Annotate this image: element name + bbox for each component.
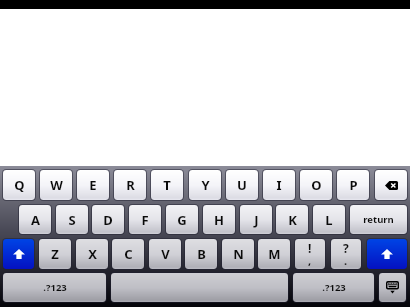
staticText: E	[89, 176, 97, 194]
staticText: I	[276, 176, 282, 194]
button[interactable]: X	[76, 239, 108, 269]
staticText: T	[163, 176, 171, 194]
staticText: U	[237, 176, 247, 194]
button[interactable]: Q	[3, 170, 35, 200]
staticText: Z	[51, 245, 59, 263]
staticText: return	[363, 213, 394, 226]
staticText: G	[177, 211, 187, 229]
button[interactable]: U	[226, 170, 258, 200]
button[interactable]: W	[40, 170, 72, 200]
staticText: .	[344, 253, 348, 268]
button[interactable]: Space	[111, 273, 288, 302]
button[interactable]: P	[337, 170, 369, 200]
button[interactable]: Shift	[367, 239, 407, 269]
button[interactable]: G	[166, 205, 198, 234]
button[interactable]: M	[258, 239, 290, 269]
staticText: X	[88, 245, 97, 263]
button[interactable]: R	[114, 170, 146, 200]
staticText: Y	[201, 176, 210, 194]
button[interactable]: I	[263, 170, 295, 200]
staticText: R	[126, 176, 135, 194]
button[interactable]: K	[276, 205, 308, 234]
staticText: Q	[14, 176, 25, 194]
button[interactable]: return	[350, 205, 407, 234]
button[interactable]: C	[112, 239, 144, 269]
staticText: H	[214, 211, 224, 229]
staticText: W	[50, 176, 63, 194]
staticText: S	[68, 211, 76, 229]
staticText: O	[311, 176, 322, 194]
button[interactable]: V	[149, 239, 181, 269]
staticText: V	[161, 245, 170, 263]
staticText: J	[254, 211, 259, 229]
staticText: !	[308, 240, 312, 256]
button[interactable]: .?123	[3, 273, 106, 302]
staticText: .?123	[43, 281, 67, 294]
button[interactable]: Backspace	[375, 170, 407, 200]
staticText: A	[31, 211, 40, 229]
button[interactable]: ?	[331, 239, 361, 269]
button[interactable]: J	[240, 205, 272, 234]
staticText: ,	[308, 253, 312, 268]
button[interactable]: B	[185, 239, 217, 269]
button[interactable]: !	[295, 239, 325, 269]
button[interactable]: D	[92, 205, 124, 234]
button[interactable]: Z	[39, 239, 71, 269]
button[interactable]: H	[203, 205, 235, 234]
staticText: D	[103, 211, 113, 229]
staticText: P	[349, 176, 358, 194]
button[interactable]: Y	[189, 170, 221, 200]
button[interactable]: O	[300, 170, 332, 200]
staticText: .?123	[322, 281, 346, 294]
staticText: N	[233, 245, 244, 263]
button[interactable]: N	[222, 239, 254, 269]
button[interactable]: S	[56, 205, 88, 234]
button[interactable]: L	[313, 205, 345, 234]
button[interactable]: F	[129, 205, 161, 234]
staticText: ?	[343, 240, 349, 256]
button[interactable]: .?123	[293, 273, 374, 302]
staticText: M	[268, 245, 281, 263]
button[interactable]: E	[77, 170, 109, 200]
button[interactable]: A	[19, 205, 51, 234]
button[interactable]: T	[151, 170, 183, 200]
staticText: F	[141, 211, 149, 229]
staticText: C	[124, 245, 133, 263]
staticText: K	[288, 211, 297, 229]
button[interactable]: Shift	[3, 239, 34, 269]
button[interactable]: Hide keyboard	[379, 273, 406, 302]
staticText: B	[197, 245, 206, 263]
staticText: L	[325, 211, 333, 229]
